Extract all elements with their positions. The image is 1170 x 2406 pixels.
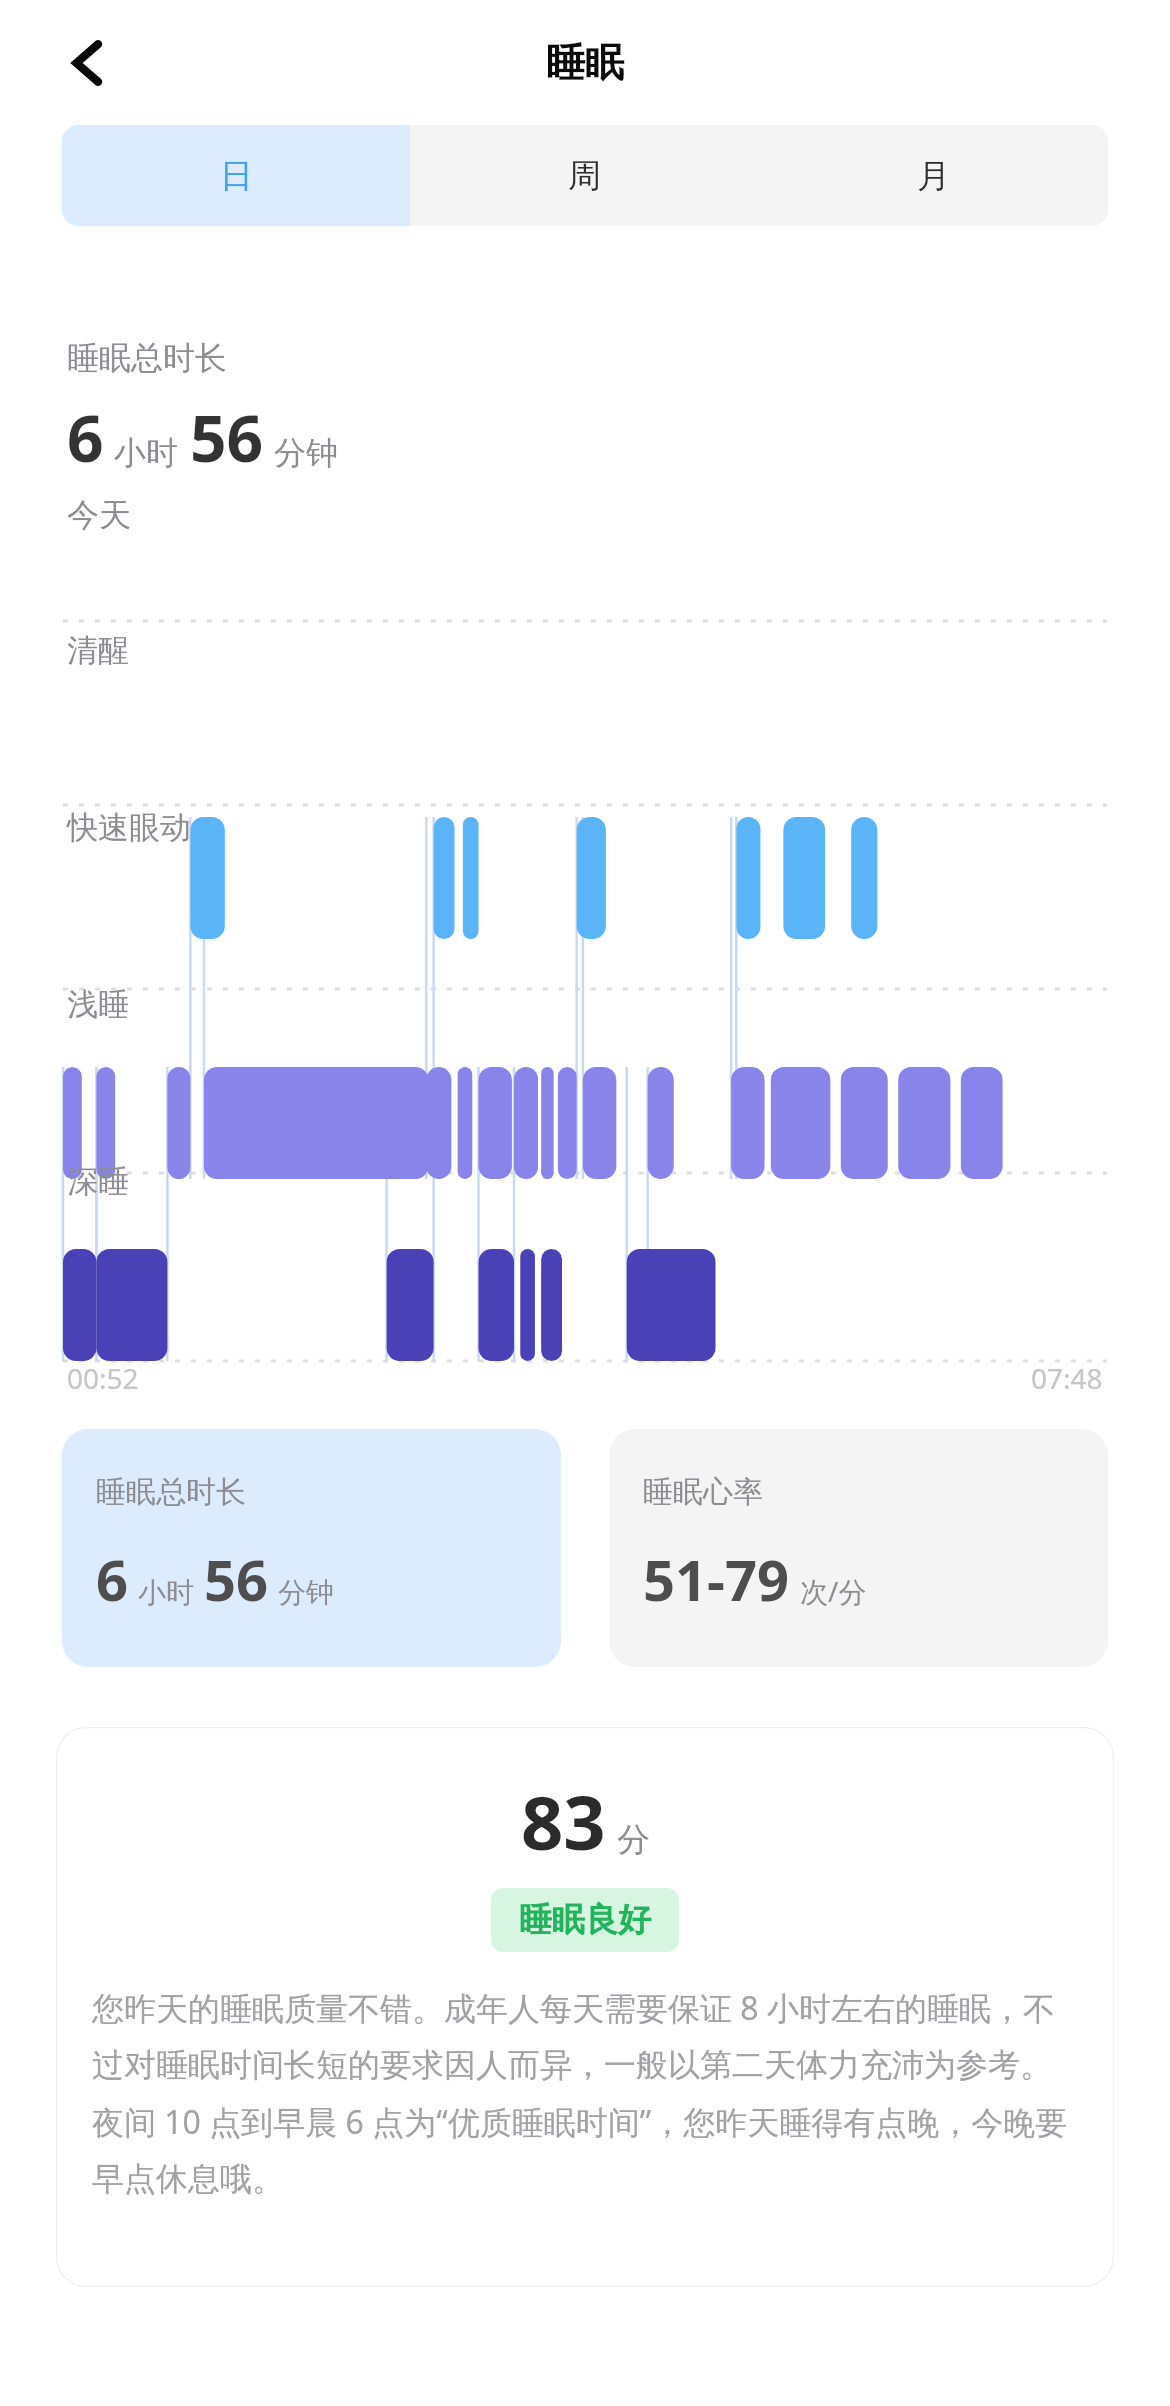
staticText: 深睡 bbox=[67, 1162, 129, 1201]
staticText: 分钟 bbox=[278, 1575, 334, 1610]
staticText: 56 bbox=[204, 1541, 269, 1617]
staticText: 睡眠总时长 bbox=[96, 1473, 246, 1511]
staticText: 83 bbox=[521, 1771, 606, 1872]
button[interactable]: 83 bbox=[56, 1727, 1114, 2287]
button[interactable]: 日 bbox=[62, 125, 410, 226]
button[interactable]: 睡眠心率 bbox=[609, 1429, 1108, 1667]
staticText: 07:48 bbox=[1031, 1359, 1103, 1397]
button[interactable]: 月 bbox=[759, 125, 1108, 226]
button[interactable]: 睡眠总时长 bbox=[62, 1429, 561, 1667]
staticText: 00:52 bbox=[67, 1359, 139, 1397]
staticText: 睡眠心率 bbox=[643, 1473, 763, 1511]
staticText: 分钟 bbox=[274, 433, 338, 473]
staticText: 51-79 bbox=[643, 1541, 790, 1617]
staticText: 快速眼动 bbox=[67, 808, 191, 847]
button[interactable]: 周 bbox=[410, 125, 759, 226]
staticText: 小时 bbox=[114, 433, 178, 473]
staticText: 56 bbox=[190, 394, 264, 481]
staticText: 睡眠总时长 bbox=[67, 338, 227, 378]
staticText: 您昨天的睡眠质量不错。成年人每天需要保证 8 小时左右的睡眠，不过对睡眠时间长短… bbox=[92, 1986, 1078, 2199]
staticText: 日 bbox=[220, 155, 253, 197]
staticText: 小时 bbox=[138, 1575, 194, 1610]
staticText: 月 bbox=[917, 155, 950, 197]
staticText: 分 bbox=[617, 1819, 650, 1861]
staticText: 今天 bbox=[67, 495, 131, 535]
staticText: 次/分 bbox=[800, 1572, 867, 1610]
staticText: 浅睡 bbox=[67, 985, 129, 1024]
staticText: 睡眠良好 bbox=[519, 1899, 651, 1941]
staticText: 清醒 bbox=[67, 631, 129, 670]
button[interactable]: Back bbox=[50, 25, 126, 101]
staticText: 睡眠 bbox=[546, 38, 624, 87]
staticText: 6 bbox=[96, 1541, 129, 1617]
staticText: 6 bbox=[67, 394, 104, 481]
staticText: 周 bbox=[568, 155, 601, 197]
